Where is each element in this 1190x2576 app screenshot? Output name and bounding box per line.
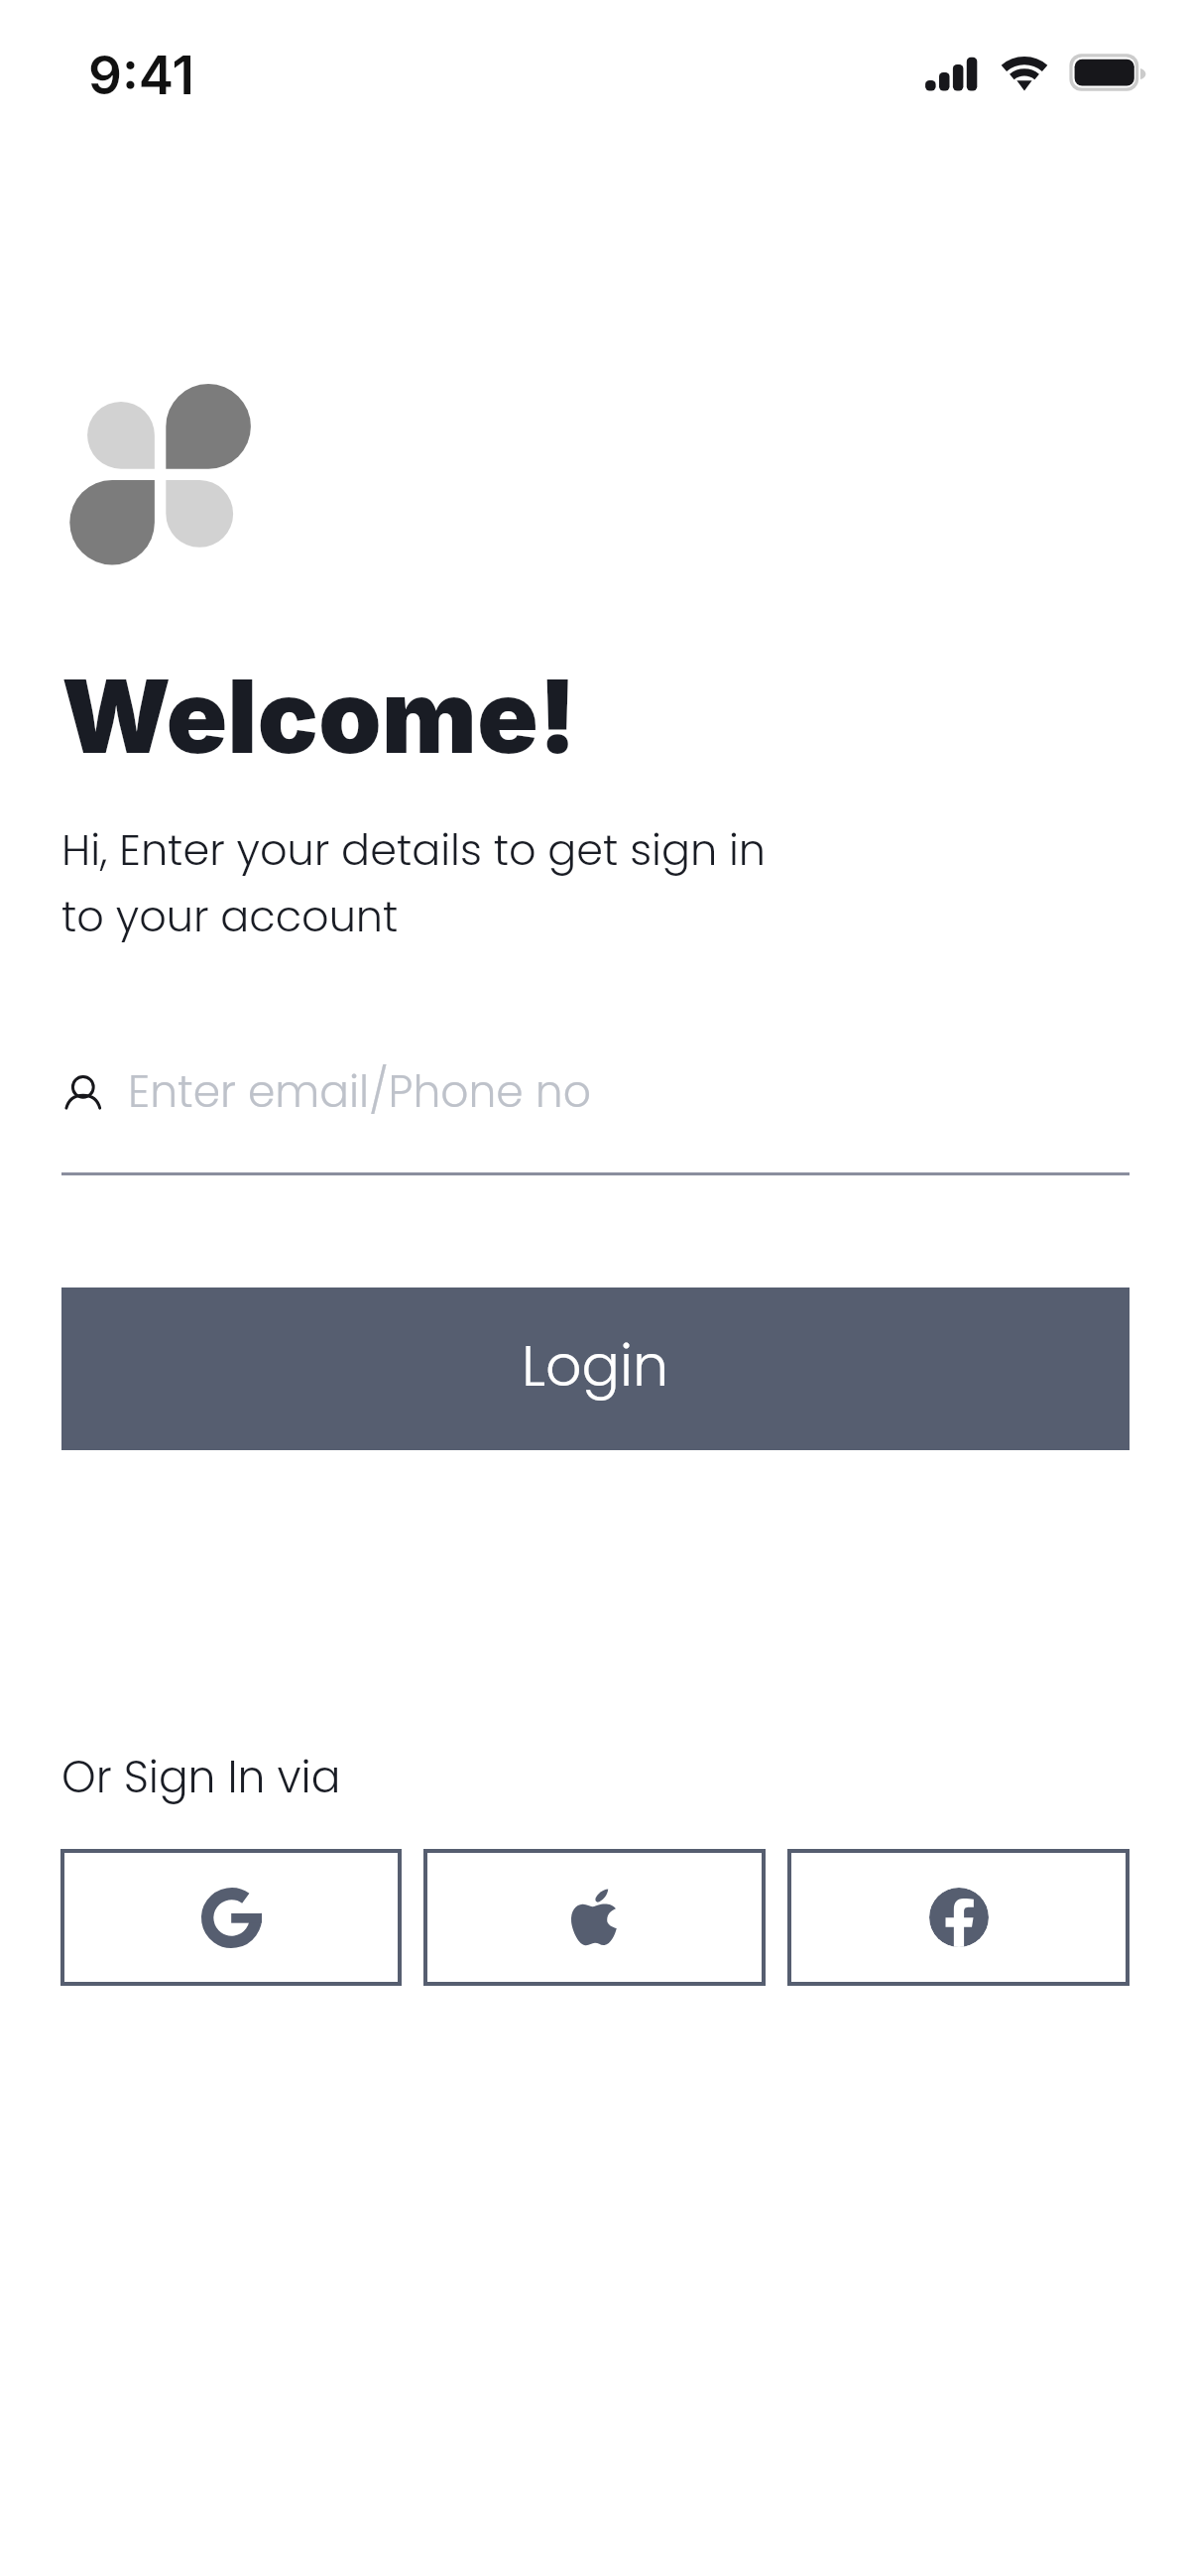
staticText: 9:41 — [88, 44, 194, 107]
button[interactable]: Login — [61, 1288, 1130, 1450]
staticText: Enter email/Phone no — [128, 1061, 591, 1123]
staticText: Or Sign In via — [61, 1747, 341, 1808]
button[interactable]: Sign in with Facebook — [787, 1849, 1130, 1986]
button[interactable]: Enter email/Phone no — [61, 1051, 1130, 1175]
button[interactable]: Sign in with Google — [60, 1849, 402, 1986]
button[interactable]: Sign in with Apple — [423, 1849, 766, 1986]
staticText: Login — [522, 1326, 669, 1406]
staticText: Welcome! — [61, 655, 577, 777]
staticText: Hi, Enter your details to get sign in to… — [61, 820, 767, 946]
